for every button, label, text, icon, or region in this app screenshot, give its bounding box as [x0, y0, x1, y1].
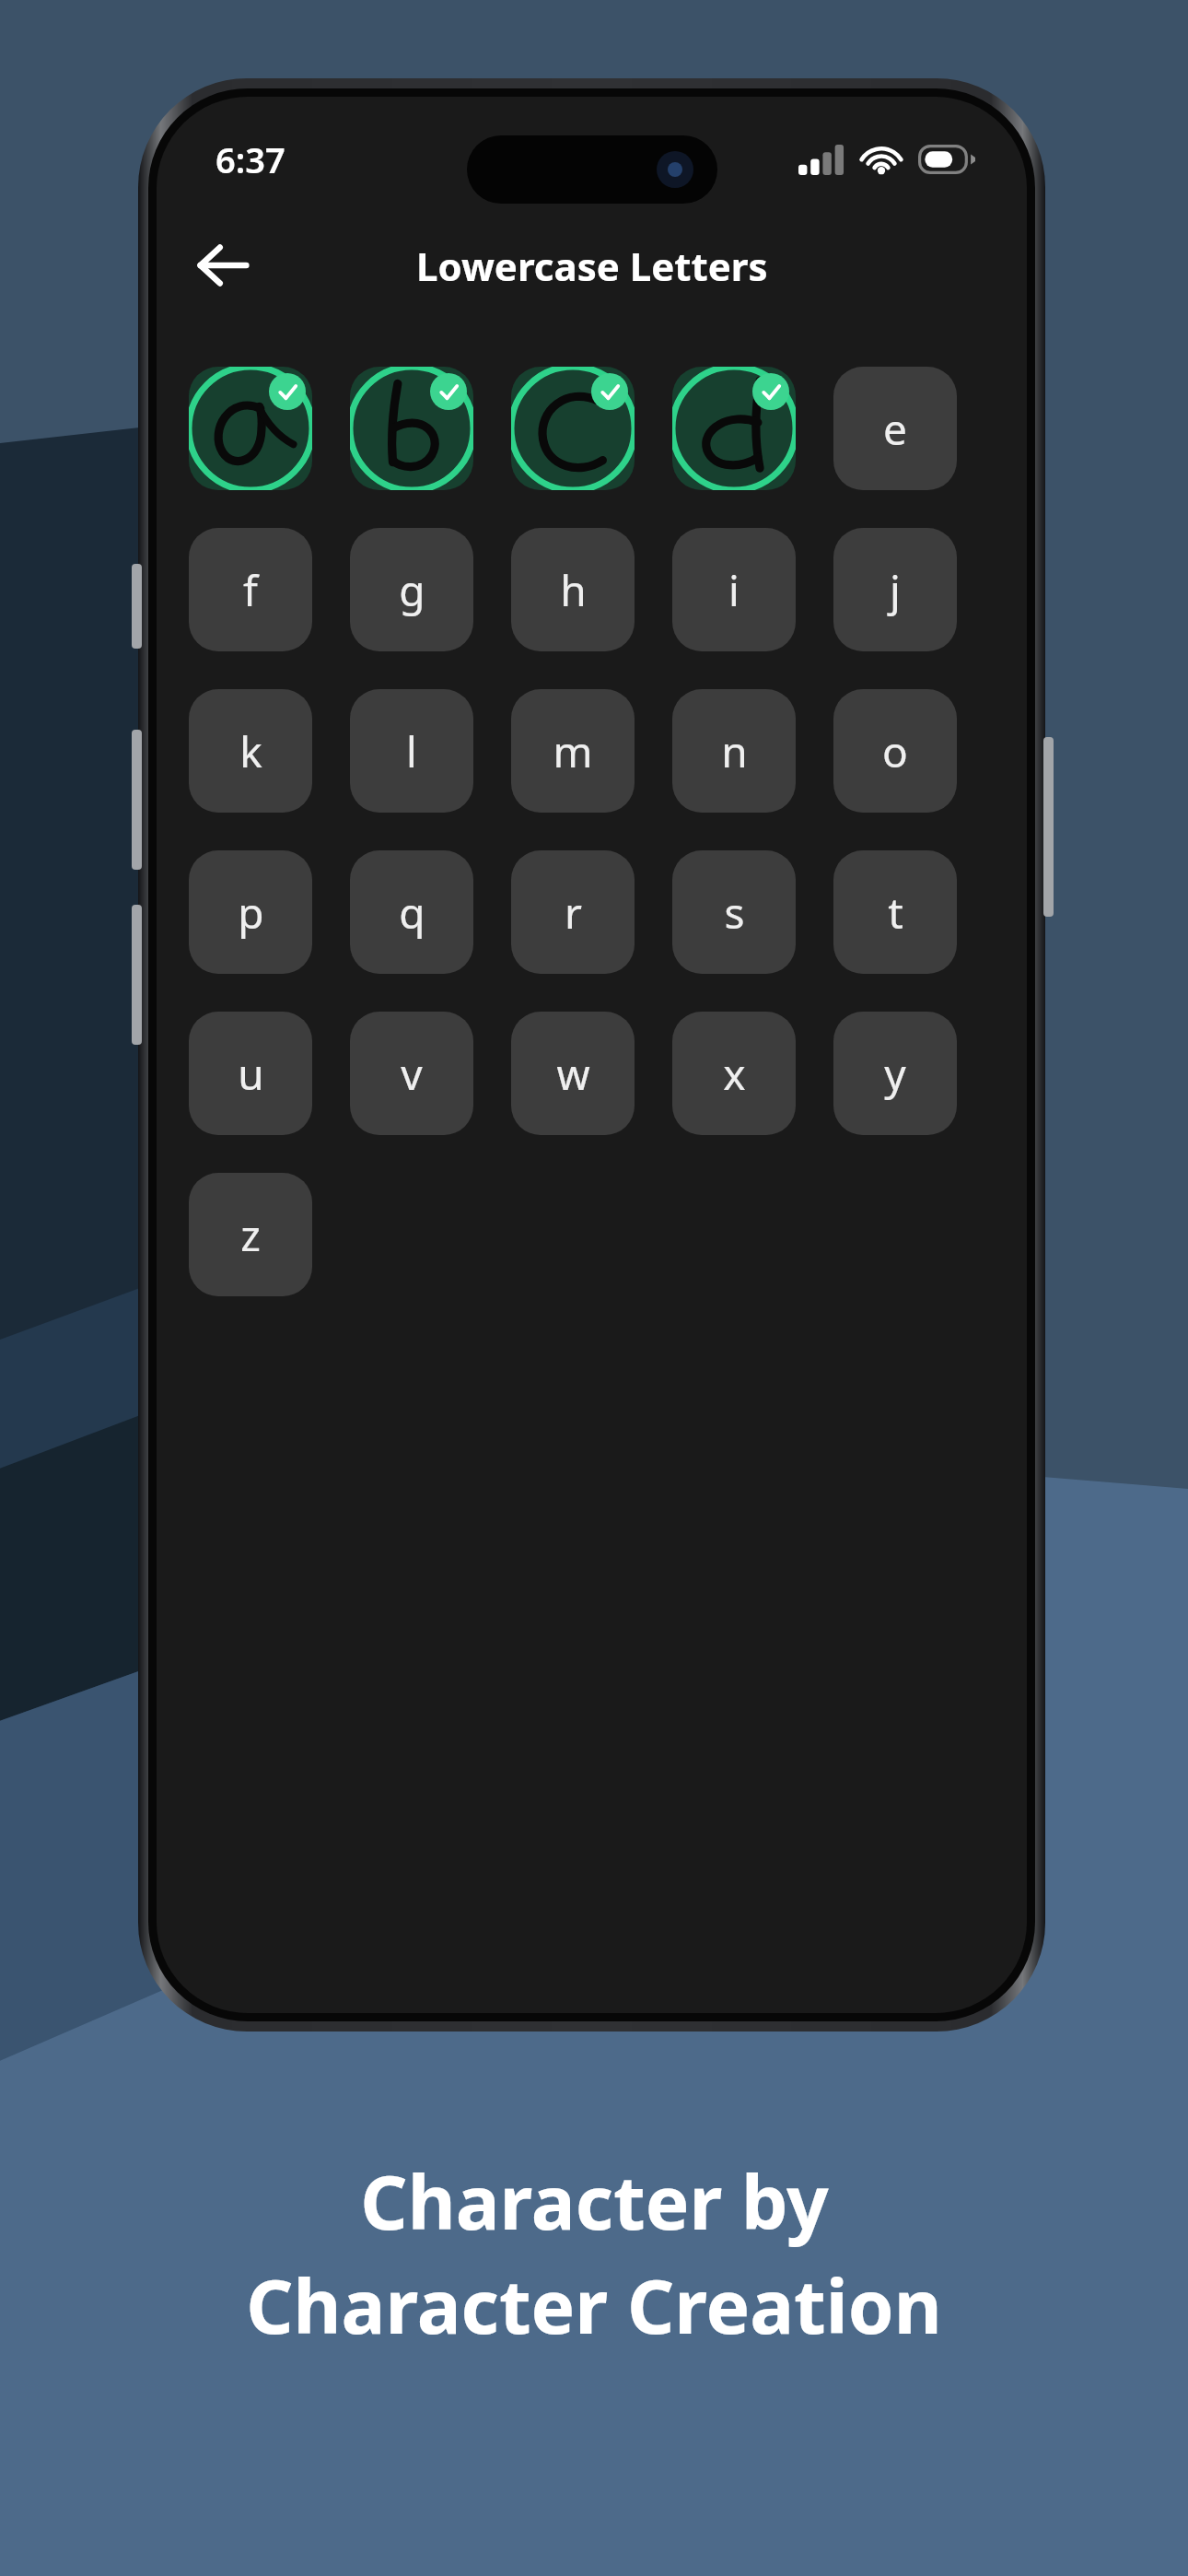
button[interactable]: k — [189, 689, 312, 813]
staticText: r — [565, 884, 582, 942]
staticText: k — [239, 722, 262, 780]
staticText: m — [553, 722, 593, 780]
button[interactable] — [511, 367, 635, 490]
staticText: u — [238, 1045, 264, 1103]
staticText: f — [243, 561, 258, 619]
button[interactable]: p — [189, 850, 312, 974]
button[interactable]: g — [350, 528, 473, 651]
staticText: v — [401, 1045, 423, 1103]
button[interactable]: j — [833, 528, 957, 651]
staticText: w — [556, 1045, 590, 1103]
staticText: l — [406, 722, 417, 780]
staticText: n — [721, 722, 748, 780]
staticText: y — [884, 1045, 906, 1103]
staticText: q — [399, 884, 425, 942]
staticText: z — [240, 1206, 261, 1264]
button[interactable]: s — [672, 850, 796, 974]
button[interactable]: u — [189, 1012, 312, 1135]
button[interactable] — [672, 367, 796, 490]
staticText: h — [560, 561, 587, 619]
staticText: Lowercase Letters — [416, 240, 768, 292]
button[interactable]: i — [672, 528, 796, 651]
button[interactable] — [350, 367, 473, 490]
button[interactable]: m — [511, 689, 635, 813]
button[interactable]: v — [350, 1012, 473, 1135]
staticText: o — [882, 722, 908, 780]
staticText: t — [888, 884, 903, 942]
staticText: g — [399, 561, 425, 619]
staticText: Character Creation — [246, 2254, 942, 2355]
button[interactable] — [189, 367, 312, 490]
button[interactable]: w — [511, 1012, 635, 1135]
button[interactable]: h — [511, 528, 635, 651]
staticText: p — [238, 884, 264, 942]
button[interactable]: x — [672, 1012, 796, 1135]
staticText: j — [890, 561, 901, 619]
button[interactable]: f — [189, 528, 312, 651]
button[interactable]: q — [350, 850, 473, 974]
button[interactable]: r — [511, 850, 635, 974]
button[interactable]: t — [833, 850, 957, 974]
button[interactable]: y — [833, 1012, 957, 1135]
button[interactable]: l — [350, 689, 473, 813]
button[interactable]: z — [189, 1173, 312, 1296]
staticText: i — [728, 561, 740, 619]
staticText: s — [724, 884, 745, 942]
button[interactable]: n — [672, 689, 796, 813]
staticText: e — [883, 400, 907, 458]
button[interactable]: e — [833, 367, 957, 490]
staticText: 6:37 — [215, 135, 285, 183]
button[interactable]: o — [833, 689, 957, 813]
button[interactable]: Back — [179, 221, 267, 310]
staticText: Character by — [360, 2150, 829, 2251]
staticText: x — [723, 1045, 746, 1103]
